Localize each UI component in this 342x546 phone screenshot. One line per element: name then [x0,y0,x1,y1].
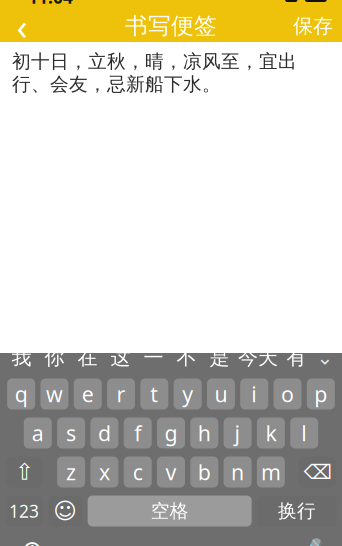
button[interactable]: Delete [298,456,336,487]
button[interactable]: q [7,378,35,409]
staticText: 今天 [238,345,278,370]
staticText: f [134,419,141,447]
button[interactable]: n [224,456,252,487]
button[interactable]: r [107,378,135,409]
button[interactable]: 是 [203,342,236,372]
staticText: 在 [77,345,97,370]
staticText: t [150,380,158,408]
button[interactable]: 保存 [284,10,342,42]
staticText: 你 [44,345,64,370]
button[interactable]: 空格 [88,495,252,526]
button[interactable]: i [240,378,268,409]
button[interactable]: j [224,417,252,448]
staticText: ☺ [53,498,77,524]
staticText: x [99,458,110,486]
button[interactable]: u [207,378,235,409]
button[interactable]: Dictate [290,534,330,546]
staticText: y [182,380,193,408]
button[interactable]: Back [0,10,44,42]
button[interactable]: c [124,456,152,487]
button[interactable]: 你 [38,342,71,372]
staticText: r [116,380,125,408]
button[interactable]: 有 [280,342,313,372]
button[interactable]: Switch keyboard [12,534,52,546]
staticText: l [301,419,307,447]
staticText: 换行 [278,499,316,522]
button[interactable]: t [140,378,168,409]
staticText: 11:04 [28,0,73,8]
button[interactable]: 这 [104,342,137,372]
staticText: z [66,458,76,486]
button[interactable]: v [157,456,185,487]
staticText: c [133,458,143,486]
staticText: ⌫ [303,461,331,483]
button[interactable]: e [74,378,102,409]
button[interactable]: o [274,378,302,409]
button[interactable]: g [157,417,185,448]
button[interactable]: y [174,378,202,409]
staticText: q [15,380,28,408]
button[interactable]: 在 [71,342,104,372]
button[interactable]: p [307,378,335,409]
button[interactable]: a [24,417,52,448]
staticText: 🎤 [297,538,322,546]
staticText: h [198,419,211,447]
staticText: ⇧ [15,459,34,485]
button[interactable]: 今天 [236,342,280,372]
staticText: 不 [176,345,196,370]
button[interactable]: 我 [5,342,38,372]
staticText: w [46,380,63,408]
staticText: b [198,458,211,486]
button[interactable]: m [257,456,285,487]
staticText: d [98,419,111,447]
button[interactable]: 不 [170,342,203,372]
button[interactable]: h [190,417,218,448]
button[interactable]: 一 [137,342,170,372]
button[interactable]: 123 [5,495,43,526]
staticText: ⌄ [316,346,333,369]
staticText: 空格 [151,499,189,522]
staticText: 这 [110,345,130,370]
staticText: 我 [11,345,31,370]
button[interactable]: k [257,417,285,448]
button[interactable]: b [190,456,218,487]
button[interactable]: z [57,456,85,487]
staticText: ⊕ [21,535,42,546]
button[interactable]: w [40,378,68,409]
staticText: a [32,419,44,447]
staticText: 保存 [293,14,333,38]
button[interactable]: ☺ [48,495,82,526]
button[interactable]: Shift [5,456,43,487]
staticText: 有 [286,345,306,370]
staticText: ‹ [16,2,27,50]
staticText: g [164,419,177,447]
button[interactable]: f [124,417,152,448]
staticText: 是 [209,345,229,370]
button[interactable]: d [90,417,118,448]
staticText: o [281,380,294,408]
staticText: n [231,458,244,486]
button[interactable]: 换行 [257,495,337,526]
staticText: s [66,419,76,447]
button[interactable]: x [90,456,118,487]
staticText: m [261,458,281,486]
staticText: 初十日，立秋，晴，凉风至，宜出行、会友，忌新船下水。 [12,50,297,96]
staticText: v [165,458,176,486]
staticText: j [235,419,241,447]
button[interactable]: l [290,417,318,448]
staticText: k [265,419,276,447]
button[interactable]: s [57,417,85,448]
staticText: 123 [9,499,39,522]
staticText: 书写便签 [125,12,217,40]
staticText: p [314,380,327,408]
button[interactable]: Hide suggestions [313,342,337,372]
staticText: 一 [143,345,163,370]
staticText: i [251,380,257,408]
staticText: e [82,380,94,408]
staticText: u [214,380,227,408]
